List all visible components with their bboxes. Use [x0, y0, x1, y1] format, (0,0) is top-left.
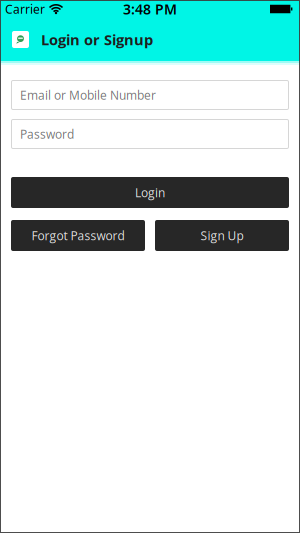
button[interactable]: Sign Up [155, 220, 289, 251]
staticText: Forgot Password [31, 227, 124, 244]
staticText: Sign Up [200, 227, 243, 244]
button[interactable]: Home [12, 31, 29, 48]
staticText: 3:48 PM [123, 0, 177, 19]
staticText: Login or Signup [41, 29, 153, 49]
button[interactable]: Forgot Password [11, 220, 145, 251]
button[interactable]: Login [11, 177, 289, 208]
staticText: Email or Mobile Number [20, 87, 156, 103]
staticText: Password [20, 126, 74, 142]
staticText: Carrier [5, 1, 45, 17]
staticText: Login [135, 184, 165, 201]
